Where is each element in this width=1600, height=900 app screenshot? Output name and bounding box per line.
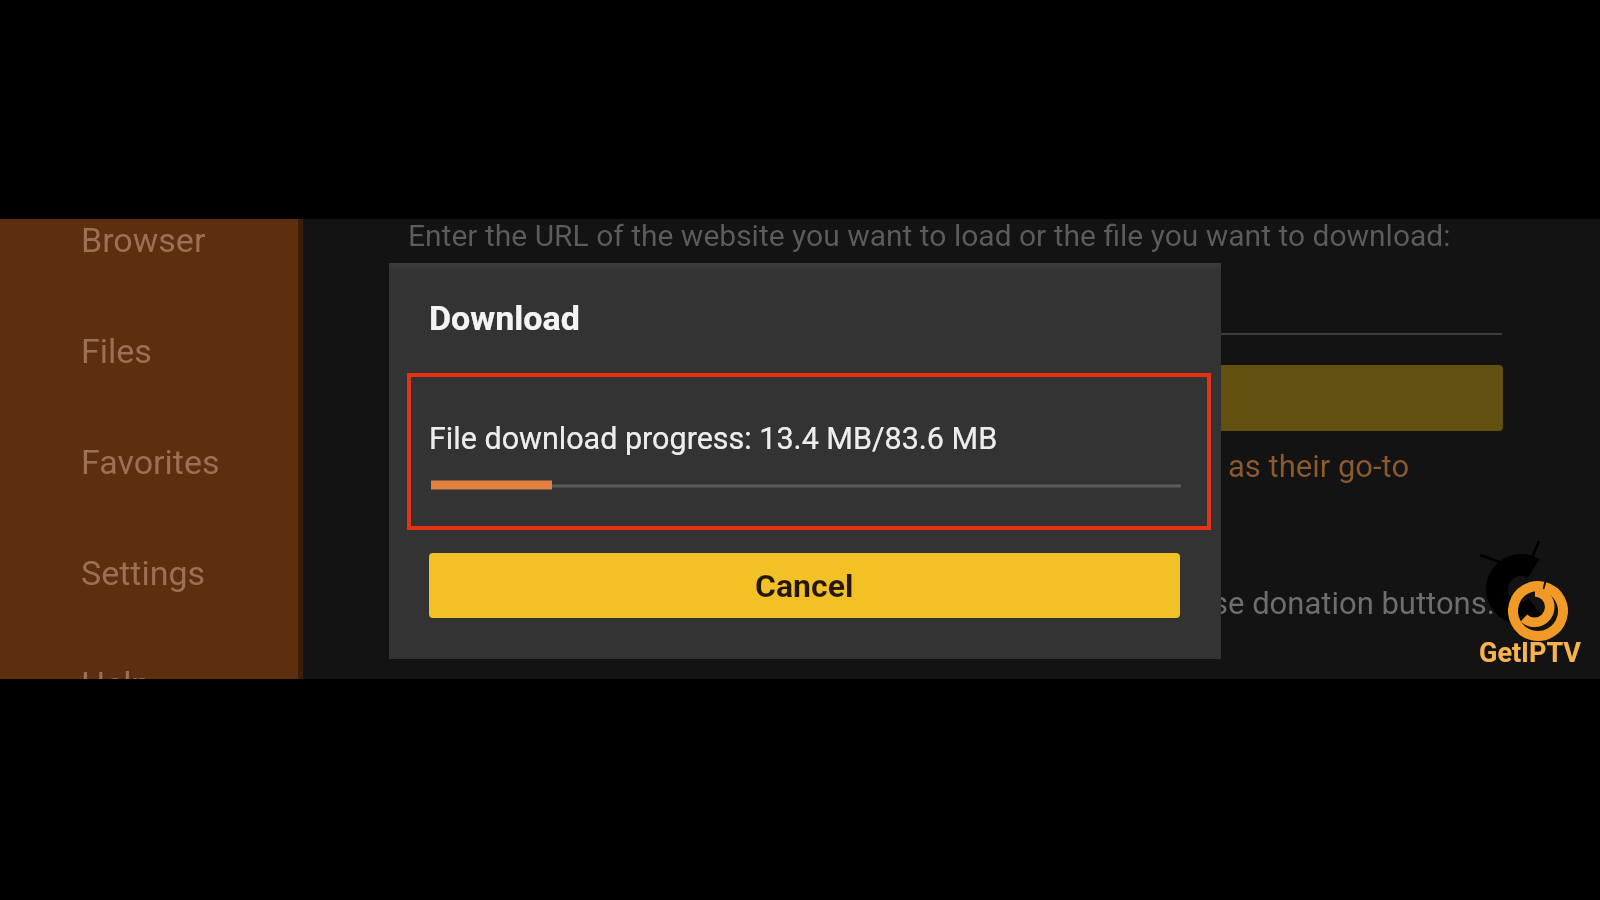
staticText: Cancel bbox=[755, 567, 854, 605]
button[interactable]: Browser bbox=[0, 219, 301, 271]
staticText: as their go-to bbox=[1228, 448, 1410, 484]
staticText: File download progress: 13.4 MB/83.6 MB bbox=[429, 421, 998, 457]
staticText: Files bbox=[81, 331, 152, 371]
staticText: Browser bbox=[81, 220, 206, 260]
staticText: Help bbox=[81, 664, 151, 679]
other: GetIPTV bbox=[1478, 548, 1600, 670]
staticText: Enter the URL of the website you want to… bbox=[408, 219, 1451, 253]
button[interactable] bbox=[1080, 365, 1503, 431]
button[interactable]: Files bbox=[0, 320, 301, 382]
staticText: se donation buttons. bbox=[1212, 585, 1495, 621]
button[interactable]: Cancel bbox=[429, 553, 1180, 618]
staticText: Download bbox=[429, 298, 580, 338]
button[interactable]: Favorites bbox=[0, 431, 301, 493]
staticText: Favorites bbox=[81, 442, 220, 482]
button[interactable]: Help bbox=[0, 653, 301, 679]
staticText: GetIPTV bbox=[1479, 637, 1582, 669]
staticText: Settings bbox=[81, 553, 206, 593]
button[interactable]: Settings bbox=[0, 542, 301, 604]
